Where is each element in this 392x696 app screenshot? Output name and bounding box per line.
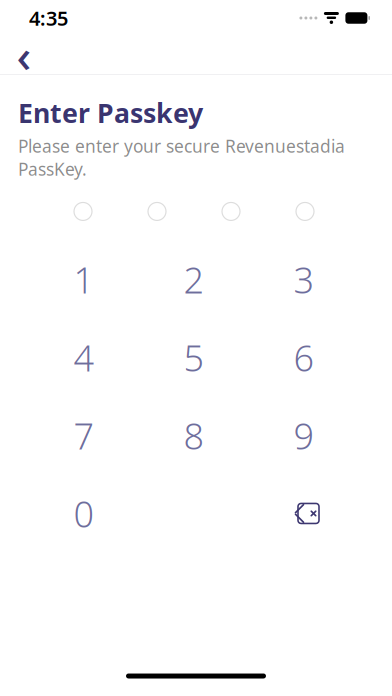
staticText: 1 bbox=[73, 255, 94, 303]
button[interactable]: 6 bbox=[249, 318, 359, 396]
button[interactable]: Back bbox=[2, 36, 46, 74]
button[interactable]: 1 bbox=[29, 240, 139, 318]
button[interactable]: 4 bbox=[29, 318, 139, 396]
staticText: Enter Passkey bbox=[18, 95, 203, 130]
button[interactable]: Delete bbox=[249, 474, 359, 552]
staticText: 9 bbox=[293, 411, 314, 459]
staticText: 8 bbox=[183, 411, 204, 459]
staticText: 5 bbox=[183, 333, 204, 381]
button[interactable]: 2 bbox=[139, 240, 249, 318]
staticText: 4:35 bbox=[29, 5, 68, 31]
button[interactable]: 9 bbox=[249, 396, 359, 474]
staticText: 4 bbox=[73, 333, 94, 381]
staticText: 3 bbox=[293, 255, 314, 303]
staticText: 2 bbox=[183, 255, 204, 303]
button[interactable]: 0 bbox=[29, 474, 139, 552]
staticText: 7 bbox=[73, 411, 94, 459]
staticText: ‹ bbox=[16, 25, 31, 85]
button[interactable]: 3 bbox=[249, 240, 359, 318]
button[interactable]: 5 bbox=[139, 318, 249, 396]
button[interactable]: 7 bbox=[29, 396, 139, 474]
staticText: Please enter your secure Revenuestadia P… bbox=[18, 134, 345, 180]
staticText: 6 bbox=[293, 333, 314, 381]
staticText: 0 bbox=[73, 489, 94, 537]
button[interactable]: 8 bbox=[139, 396, 249, 474]
